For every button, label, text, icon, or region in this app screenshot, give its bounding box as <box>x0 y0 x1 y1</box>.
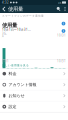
staticText: 4:32 <box>2 1 9 4</box>
button[interactable]: Back <box>0 5 8 13</box>
staticText: 10/31 <box>57 34 66 37</box>
staticText: お知らせ <box>8 93 24 98</box>
button[interactable]: 詳しい使用量を見る <box>0 63 68 68</box>
staticText: 使用量 <box>2 22 17 29</box>
staticText: 使用量 <box>8 6 23 12</box>
staticText: 3GB <box>2 32 7 39</box>
button[interactable]: アカウント情報 <box>0 79 68 90</box>
staticText: i <box>63 29 64 33</box>
button[interactable]: 料金 <box>0 68 68 79</box>
staticText: スマートフォンのデータ通信量 <box>2 14 44 17</box>
staticText: 10/31 <box>57 59 66 63</box>
staticText: 10/1 <box>2 59 9 63</box>
staticText: 10月1日〜10月31日までの合計 <box>2 28 31 31</box>
button[interactable]: お知らせ <box>0 90 68 101</box>
staticText: 詳しい使用量を見る <box>2 64 29 67</box>
staticText: LTE <box>58 1 61 4</box>
staticText: 料金 <box>8 71 16 76</box>
staticText: 設定 <box>8 104 16 109</box>
button[interactable]: 設定 <box>0 101 68 112</box>
button[interactable]: Search <box>55 5 62 13</box>
button[interactable]: Information <box>61 21 66 26</box>
staticText: アカウント情報 <box>8 82 36 87</box>
button[interactable]: More options <box>62 5 68 13</box>
button[interactable]: Help <box>61 28 66 33</box>
staticText: i <box>63 22 64 25</box>
